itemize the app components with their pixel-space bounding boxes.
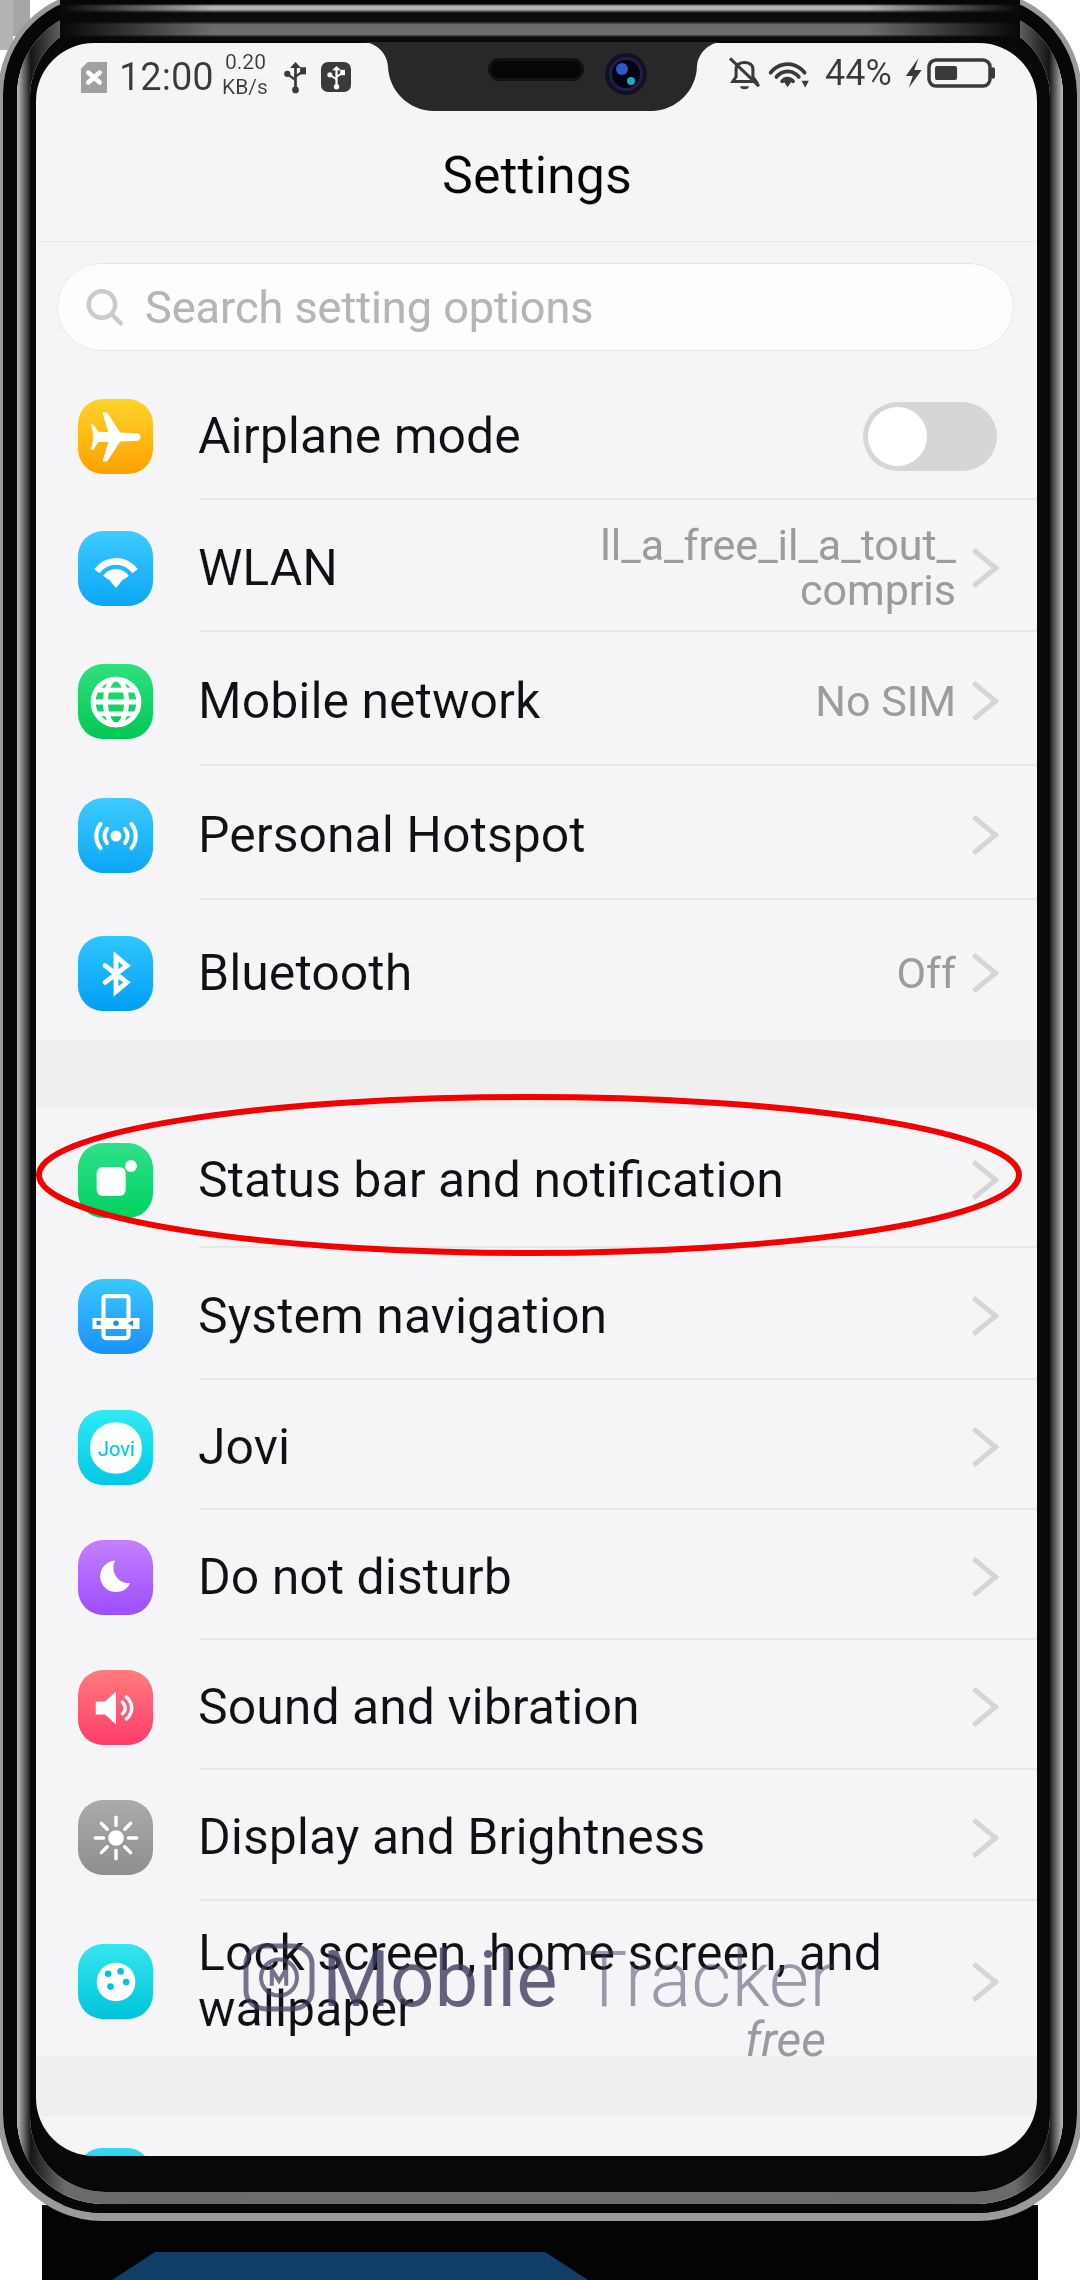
button[interactable]: Sound and vibration xyxy=(36,1640,1037,1768)
button[interactable]: System navigation xyxy=(36,1248,1037,1378)
button[interactable]: Airplane mode toggle xyxy=(863,402,997,471)
button[interactable]: WLAN xyxy=(36,500,1037,630)
button[interactable]: Lock screen, home screen, and wallpaper xyxy=(36,1901,1037,2056)
button[interactable]: Airplane mode xyxy=(36,368,1037,498)
staticText: 0.20 xyxy=(225,50,266,75)
other: USB options xyxy=(321,62,351,92)
button[interactable]: Do not disturb xyxy=(36,1510,1037,1638)
button[interactable]: Personal Hotspot xyxy=(36,766,1037,898)
staticText: No SIM xyxy=(815,676,956,726)
button[interactable]: Status bar and notification xyxy=(36,1108,1037,1246)
button[interactable] xyxy=(36,2148,1037,2156)
staticText: Sound and vibration xyxy=(198,1678,974,1737)
staticText: Personal Hotspot xyxy=(198,806,974,865)
other: Silent mode xyxy=(730,57,759,90)
other: No SIM card xyxy=(81,62,107,93)
staticText: Tracker xyxy=(581,1934,836,2025)
staticText: Jovi xyxy=(98,1437,135,1460)
button[interactable]: Jovi xyxy=(36,1380,1037,1508)
staticText: Lock screen, home screen, and wallpaper xyxy=(198,1924,974,2039)
staticText: Display and Brightness xyxy=(198,1808,974,1867)
staticText: Status bar and notification xyxy=(198,1151,974,1210)
staticText: 44% xyxy=(825,52,892,94)
staticText: ll_a_free_il_a_tout_ compris xyxy=(600,520,956,616)
staticText: free xyxy=(745,2011,826,2067)
staticText: WLAN xyxy=(198,539,600,598)
staticText: Bluetooth xyxy=(198,944,896,1003)
button[interactable]: Display and Brightness xyxy=(36,1770,1037,1899)
staticText: System navigation xyxy=(198,1287,974,1346)
other: USB connected xyxy=(285,62,306,93)
other: Wi-Fi xyxy=(770,57,810,90)
staticText: Mobile xyxy=(322,1934,558,2025)
staticText: Settings xyxy=(442,145,632,206)
staticText: Search setting options xyxy=(145,281,594,334)
staticText: Do not disturb xyxy=(198,1548,974,1607)
staticText: Airplane mode xyxy=(198,407,863,466)
staticText: Jovi xyxy=(198,1418,974,1477)
staticText: Mobile network xyxy=(198,672,815,731)
button[interactable]: Search setting options xyxy=(57,263,1014,351)
button[interactable]: Mobile network xyxy=(36,632,1037,764)
button[interactable]: Bluetooth xyxy=(36,900,1037,1040)
other: Battery 44 percent xyxy=(929,60,995,86)
staticText: 12:00 xyxy=(119,55,214,100)
staticText: Off xyxy=(896,948,956,998)
staticText: KB/s xyxy=(222,75,268,100)
